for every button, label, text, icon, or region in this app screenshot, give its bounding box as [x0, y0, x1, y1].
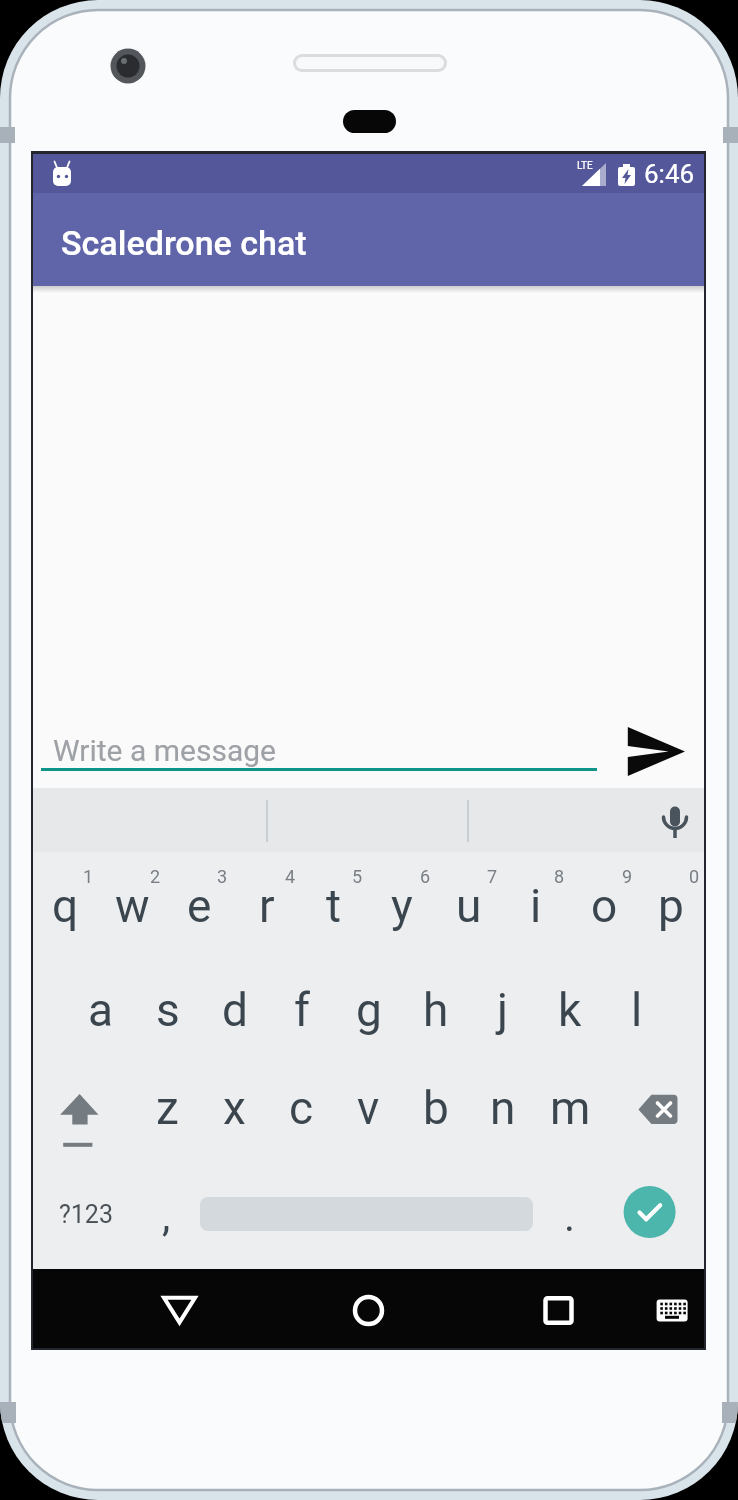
- button[interactable]: e: [166, 873, 232, 939]
- staticText: j: [497, 983, 509, 1037]
- staticText: l: [631, 983, 643, 1037]
- button[interactable]: r: [234, 873, 300, 939]
- staticText: 8: [554, 866, 565, 887]
- button[interactable]: f: [269, 977, 335, 1043]
- button[interactable]: [527, 1279, 589, 1341]
- staticText: 0: [689, 866, 700, 887]
- staticText: w: [115, 879, 150, 933]
- button[interactable]: q: [32, 873, 98, 939]
- staticText: o: [591, 879, 618, 933]
- button[interactable]: j: [470, 977, 536, 1043]
- staticText: t: [326, 879, 342, 933]
- button[interactable]: [645, 794, 705, 848]
- button[interactable]: p: [638, 873, 704, 939]
- button[interactable]: [46, 1194, 126, 1234]
- staticText: 6:46: [644, 159, 695, 189]
- button[interactable]: d: [202, 977, 268, 1043]
- button[interactable]: u: [436, 873, 502, 939]
- button[interactable]: t: [301, 873, 367, 939]
- button[interactable]: i: [503, 873, 569, 939]
- button[interactable]: [149, 1279, 211, 1341]
- staticText: x: [223, 1081, 246, 1135]
- staticText: 6: [420, 866, 431, 887]
- button[interactable]: s: [135, 977, 201, 1043]
- button[interactable]: [641, 1279, 703, 1341]
- staticText: ?123: [59, 1200, 113, 1229]
- staticText: 4: [285, 866, 296, 887]
- button[interactable]: [623, 1186, 676, 1239]
- button[interactable]: x: [201, 1075, 267, 1141]
- staticText: d: [222, 983, 248, 1037]
- staticText: a: [88, 983, 114, 1037]
- button[interactable]: [626, 1076, 690, 1140]
- button[interactable]: o: [571, 873, 637, 939]
- staticText: b: [423, 1081, 449, 1135]
- button[interactable]: b: [403, 1075, 469, 1141]
- staticText: 3: [217, 866, 228, 887]
- staticText: q: [52, 879, 79, 933]
- button[interactable]: c: [268, 1075, 334, 1141]
- staticText: 2: [150, 866, 161, 887]
- staticText: v: [357, 1081, 380, 1135]
- button[interactable]: l: [604, 977, 670, 1043]
- staticText: .: [564, 1192, 576, 1241]
- staticText: f: [294, 983, 310, 1037]
- button[interactable]: v: [335, 1075, 401, 1141]
- staticText: p: [658, 879, 684, 933]
- button[interactable]: z: [134, 1075, 200, 1141]
- button[interactable]: g: [336, 977, 402, 1043]
- staticText: k: [558, 983, 582, 1037]
- button[interactable]: [338, 1279, 400, 1341]
- staticText: g: [356, 983, 382, 1037]
- staticText: Scaledrone chat: [61, 223, 307, 263]
- staticText: 1: [83, 866, 94, 887]
- staticText: 7: [487, 866, 498, 887]
- staticText: e: [187, 879, 212, 933]
- staticText: z: [156, 1081, 179, 1135]
- staticText: LTE: [577, 160, 593, 172]
- button[interactable]: h: [403, 977, 469, 1043]
- button[interactable]: [613, 712, 697, 782]
- staticText: y: [391, 879, 413, 933]
- staticText: r: [259, 879, 275, 933]
- button[interactable]: [41, 714, 597, 772]
- button[interactable]: [47, 1076, 111, 1140]
- staticText: h: [423, 983, 449, 1037]
- button[interactable]: a: [68, 977, 134, 1043]
- button[interactable]: y: [369, 873, 435, 939]
- button[interactable]: w: [99, 873, 165, 939]
- staticText: n: [490, 1081, 516, 1135]
- staticText: m: [550, 1081, 591, 1135]
- staticText: i: [530, 879, 542, 933]
- staticText: 9: [622, 866, 633, 887]
- button[interactable]: m: [537, 1075, 603, 1141]
- button[interactable]: k: [537, 977, 603, 1043]
- staticText: u: [456, 879, 482, 933]
- staticText: Write a message: [53, 733, 276, 768]
- staticText: s: [156, 983, 180, 1037]
- button[interactable]: n: [470, 1075, 536, 1141]
- staticText: c: [289, 1081, 314, 1135]
- staticText: 5: [352, 866, 363, 887]
- staticText: ,: [162, 1192, 171, 1241]
